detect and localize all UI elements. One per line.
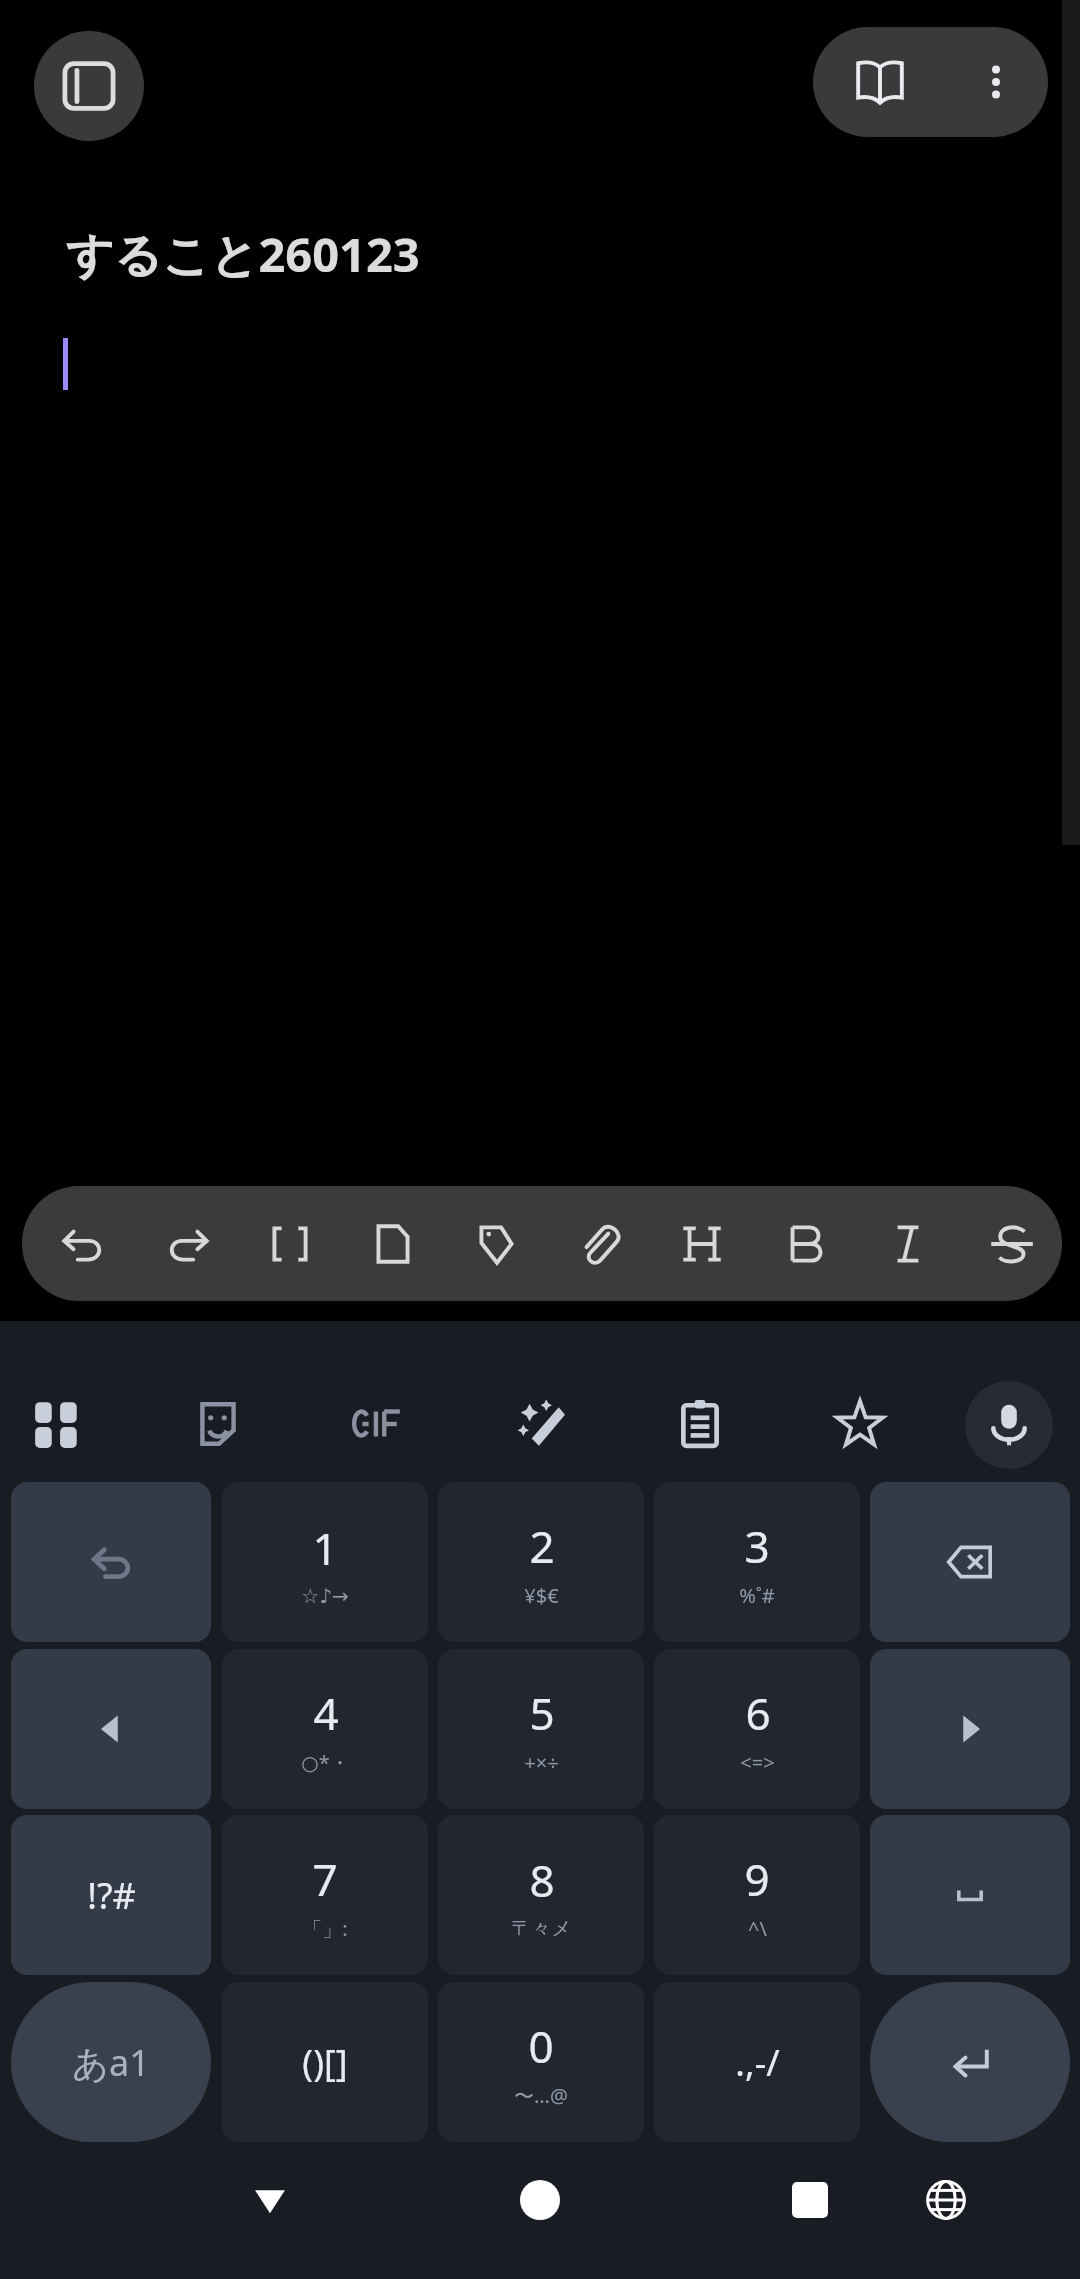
staticText: 5 [529,1683,555,1743]
button[interactable]: New note [345,1194,441,1293]
staticText: 8 [529,1850,555,1910]
button[interactable]: 8 [438,1815,644,1975]
button[interactable]: 2 [438,1482,644,1642]
button[interactable]: Space [870,1815,1070,1975]
button[interactable]: Brackets [242,1194,338,1293]
staticText: ^\ [748,1915,767,1942]
button[interactable]: 3 [654,1482,860,1642]
staticText: ☆♪→ [301,1584,349,1607]
staticText: 3 [744,1516,770,1576]
button[interactable]: 1 [222,1482,428,1642]
button[interactable]: GIF [333,1379,423,1469]
button[interactable]: 5 [438,1649,644,1809]
staticText: ○*・ [301,1749,350,1776]
button[interactable]: Strikethrough [963,1194,1059,1293]
button[interactable]: Change input method [908,2162,984,2238]
button[interactable]: Attach [551,1194,647,1293]
button[interactable]: Heading [654,1194,750,1293]
button[interactable]: Notes list [34,31,144,141]
staticText: <=> [740,1749,775,1776]
staticText: 6 [745,1683,771,1743]
button[interactable]: 4 [222,1649,428,1809]
button[interactable]: 9 [654,1815,860,1975]
button[interactable]: Undo [11,1482,211,1642]
button[interactable]: !?# [11,1815,211,1975]
button[interactable]: Reading mode [825,27,935,137]
button[interactable]: Bold [757,1194,853,1293]
button[interactable]: Voice input [965,1381,1053,1469]
staticText: +×÷ [524,1749,559,1776]
staticText: 0 [528,2016,554,2076]
staticText: 「」: [302,1915,348,1942]
button[interactable]: ()[] [222,1982,428,2142]
staticText: あa1 [72,2038,150,2087]
button[interactable]: Enter [870,1982,1070,2142]
staticText: !?# [87,1871,136,1920]
button[interactable]: Redo [139,1194,235,1293]
staticText: 〒々メ [511,1916,572,1941]
button[interactable]: More options [943,27,1048,137]
button[interactable]: Home [502,2162,578,2238]
button[interactable]: 6 [654,1649,860,1809]
button[interactable]: Favorites [815,1379,905,1469]
staticText: ()[] [302,2038,348,2087]
staticText: 2 [529,1516,555,1576]
button[interactable]: 0 [438,1982,644,2142]
staticText: 〜…@ [514,2082,568,2109]
staticText: %˚# [739,1582,775,1609]
button[interactable]: Tag [448,1194,544,1293]
button[interactable]: Write assist [495,1379,585,1469]
staticText: すること260123 [66,222,420,286]
staticText: .,-/ [735,2038,780,2087]
button[interactable]: Italic [860,1194,956,1293]
button[interactable]: Delete [870,1482,1070,1642]
button[interactable]: Stickers [173,1379,263,1469]
button[interactable]: Cursor left [11,1649,211,1809]
button[interactable]: Cursor right [870,1649,1070,1809]
button[interactable]: Undo [36,1194,132,1293]
staticText: 9 [744,1849,770,1909]
staticText: 1 [312,1518,338,1578]
button[interactable]: Hide keyboard [232,2162,308,2238]
staticText: 7 [312,1849,338,1909]
button[interactable]: あa1 [11,1982,211,2142]
button[interactable]: .,-/ [654,1982,860,2142]
staticText: ¥$€ [524,1582,559,1609]
button[interactable]: Recents [772,2162,848,2238]
staticText: 4 [313,1683,339,1743]
button[interactable]: Clipboard [655,1379,745,1469]
button[interactable]: 7 [222,1815,428,1975]
button[interactable]: Keyboard modes [13,1379,103,1469]
